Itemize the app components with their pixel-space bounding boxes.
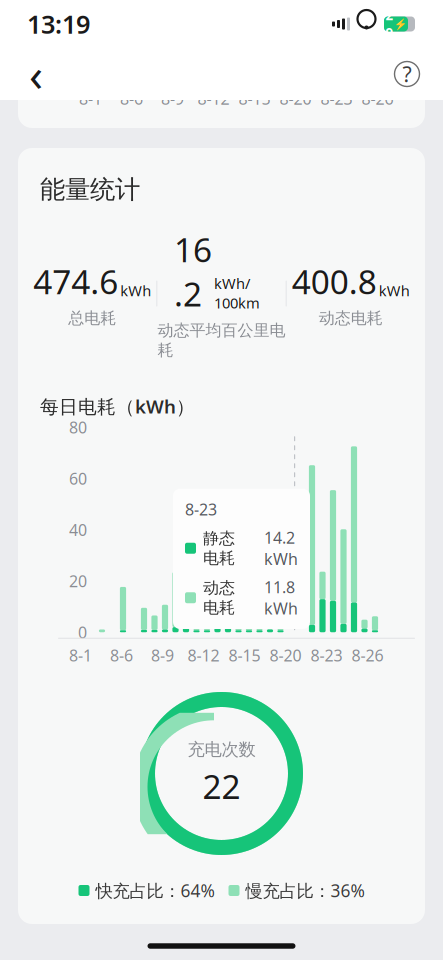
button[interactable]: Help bbox=[385, 52, 429, 96]
staticText: 动态电耗 bbox=[203, 578, 235, 617]
staticText: 动态电耗 bbox=[319, 308, 383, 328]
staticText: 8-12 bbox=[187, 645, 219, 666]
staticText: 充电次数 bbox=[187, 739, 255, 760]
staticText: 8-23 bbox=[310, 645, 342, 666]
staticText: 8-1 bbox=[69, 645, 92, 666]
staticText: 8-9 bbox=[161, 88, 184, 109]
staticText: 8-26 bbox=[351, 645, 383, 666]
staticText: 慢充占比：36% bbox=[245, 879, 364, 902]
staticText: 400.8 bbox=[292, 259, 377, 303]
staticText: 8-23 bbox=[185, 499, 217, 520]
staticText: 13:19 bbox=[27, 7, 90, 41]
staticText: 8-6 bbox=[120, 88, 143, 109]
staticText: 能量统计 bbox=[40, 174, 140, 205]
staticText: 60 bbox=[69, 468, 87, 489]
staticText: 474.6 bbox=[33, 259, 118, 303]
staticText: 8-26 bbox=[361, 88, 393, 109]
staticText: 总电耗 bbox=[68, 308, 116, 328]
staticText: 16.2 bbox=[174, 227, 212, 316]
staticText: ＊数据准确性将受车端【位置服务】开关影响， bbox=[43, 948, 400, 960]
staticText: 8-6 bbox=[110, 645, 133, 666]
staticText: ‹ bbox=[29, 44, 43, 104]
staticText: 8-1 bbox=[79, 88, 102, 109]
staticText: 80 bbox=[69, 417, 87, 438]
staticText: 8-12 bbox=[197, 88, 229, 109]
staticText: kWh/100km bbox=[214, 274, 260, 313]
staticText: 8-15 bbox=[238, 88, 270, 109]
staticText: 0 bbox=[78, 622, 87, 643]
staticText: 8-20 bbox=[269, 645, 301, 666]
staticText: 每日电耗（kWh） bbox=[40, 394, 195, 419]
staticText: 8-15 bbox=[228, 645, 260, 666]
staticText: ⚡ bbox=[393, 18, 406, 30]
button[interactable]: Back bbox=[14, 52, 58, 96]
staticText: 40 bbox=[69, 519, 87, 540]
staticText: 8-23 bbox=[320, 88, 352, 109]
staticText: ? bbox=[402, 60, 411, 88]
staticText: 11.8kWh bbox=[264, 576, 298, 619]
staticText: 静态电耗 bbox=[203, 529, 235, 568]
staticText: 22 bbox=[202, 764, 240, 808]
staticText: kWh bbox=[379, 281, 410, 300]
staticText: 动态平均百公里电耗 bbox=[157, 321, 285, 360]
staticText: 快充占比：64% bbox=[95, 879, 214, 902]
staticText: 8-20 bbox=[279, 88, 311, 109]
staticText: 14.2kWh bbox=[264, 527, 298, 569]
staticText: 8-9 bbox=[151, 645, 174, 666]
staticText: 20 bbox=[69, 570, 87, 592]
staticText: 29 bbox=[385, 6, 393, 42]
staticText: kWh bbox=[120, 281, 151, 300]
